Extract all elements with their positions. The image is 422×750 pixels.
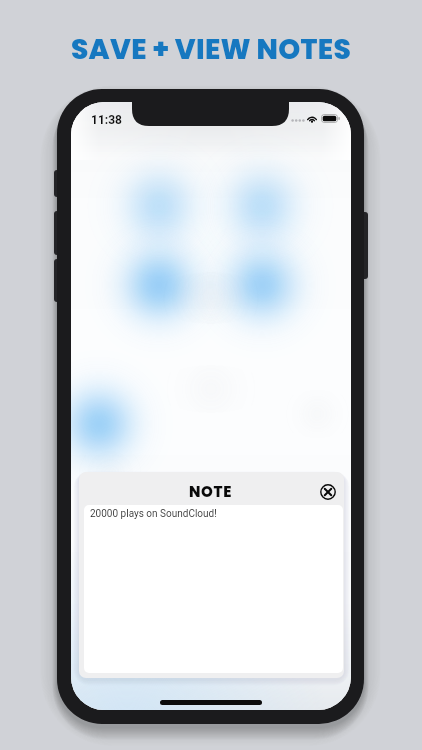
staticText: 20000 plays on SoundCloud! (90, 508, 217, 520)
staticText: NOTE (189, 481, 232, 502)
staticText: SAVE + VIEW NOTES (0, 30, 422, 69)
staticText: 11:38 (91, 113, 122, 127)
button[interactable]: Close note (320, 484, 336, 500)
